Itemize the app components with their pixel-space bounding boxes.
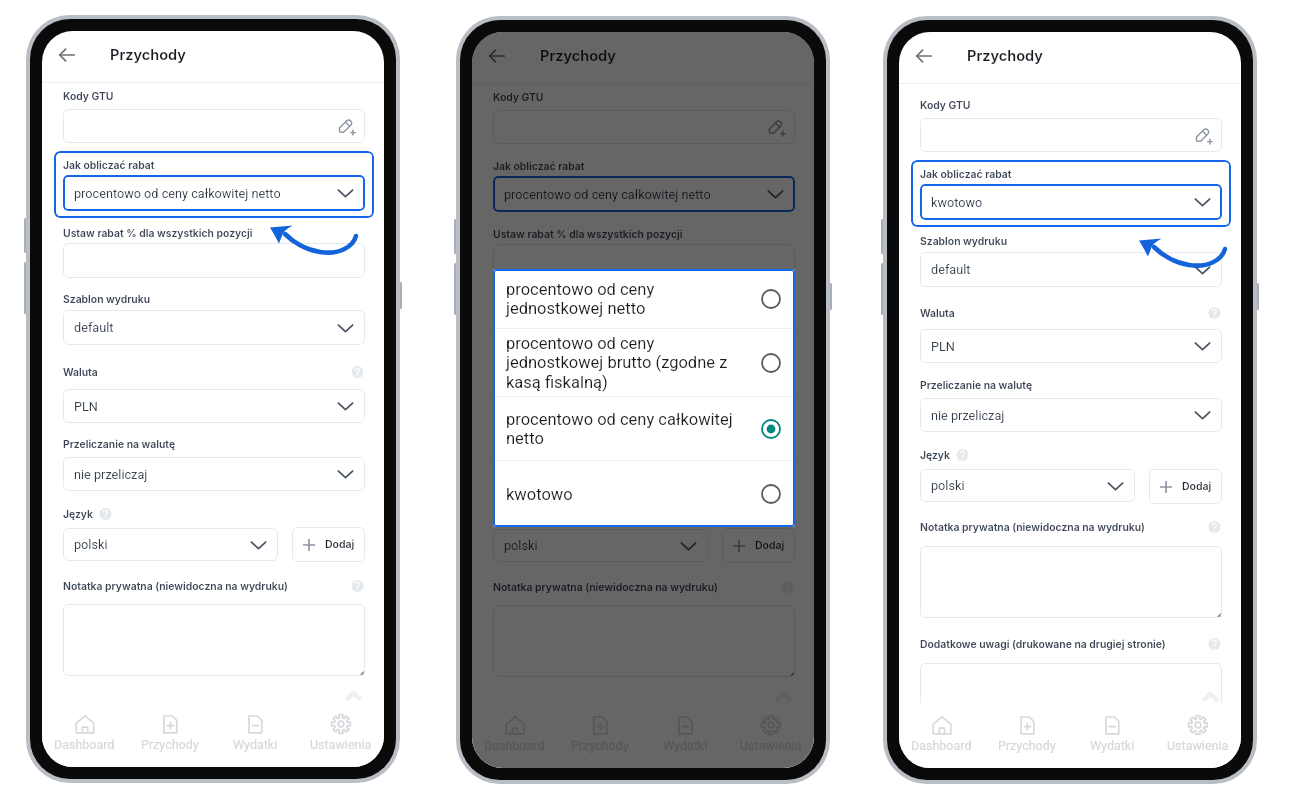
staticText: Szablon wydruku (920, 235, 1008, 247)
button[interactable]: polski (493, 529, 708, 562)
button[interactable]: polski (63, 528, 278, 561)
button[interactable]: Dashboard (42, 710, 127, 755)
staticText: Notatka prywatna (niewidoczna na wydruku… (493, 581, 718, 593)
staticText: Kody GTU (63, 90, 114, 102)
button[interactable]: Dodaj (292, 527, 365, 562)
staticText: polski (504, 538, 538, 553)
staticText: kwotowo (931, 195, 983, 210)
button[interactable]: kwotowo (493, 461, 795, 527)
button[interactable] (920, 118, 1222, 152)
button[interactable] (920, 663, 1222, 718)
button[interactable]: Back (484, 43, 510, 69)
button[interactable]: PLN (63, 389, 365, 423)
staticText: Waluta (493, 367, 528, 379)
staticText: Dashboard (911, 738, 972, 753)
button[interactable]: default (63, 310, 365, 345)
button[interactable]: procentowo od ceny jednostkowej brutto (… (493, 329, 795, 396)
staticText: Wydatki (1090, 738, 1135, 753)
staticText: Przychody (998, 738, 1056, 753)
staticText: Przychody (967, 47, 1043, 65)
staticText: Przychody (571, 738, 629, 753)
button[interactable] (63, 109, 365, 143)
staticText: Waluta (63, 366, 98, 378)
button[interactable]: PLN (920, 329, 1222, 363)
staticText: Język (63, 508, 93, 520)
staticText: Szablon wydruku (493, 294, 581, 306)
button[interactable]: Przychody (557, 711, 642, 756)
button[interactable]: Back (54, 42, 80, 68)
staticText: Przeliczanie na walutę (63, 438, 176, 450)
button[interactable]: procentowo od ceny całkowitej netto (63, 175, 365, 211)
staticText: Wydatki (663, 738, 708, 753)
button[interactable]: Wydatki (1069, 711, 1155, 756)
button[interactable]: Ustawienia (728, 711, 814, 756)
button[interactable]: Ustawienia (298, 710, 384, 755)
button[interactable]: Wydatki (642, 711, 728, 756)
button[interactable]: Back (911, 43, 937, 69)
staticText: Dodaj (1182, 480, 1212, 493)
staticText: polski (931, 478, 965, 493)
staticText: kwotowo (506, 485, 752, 504)
staticText: Język (920, 449, 950, 461)
button[interactable]: Przychody (127, 710, 212, 755)
button[interactable]: procentowo od ceny jednostkowej netto (493, 269, 795, 328)
button[interactable] (920, 546, 1222, 618)
staticText: Waluta (920, 307, 955, 319)
button[interactable]: default (920, 252, 1222, 287)
staticText: Dashboard (54, 737, 115, 752)
button[interactable] (63, 604, 365, 676)
button[interactable]: nie przeliczaj (493, 458, 795, 492)
staticText: Notatka prywatna (niewidoczna na wydruku… (920, 521, 1145, 533)
button[interactable]: Przychody (984, 711, 1069, 756)
button[interactable]: nie przeliczaj (63, 457, 365, 491)
button[interactable] (493, 244, 795, 279)
staticText: Dodaj (325, 538, 355, 551)
button[interactable]: Wydatki (212, 710, 298, 755)
staticText: nie przeliczaj (931, 408, 1005, 423)
button[interactable]: procentowo od ceny całkowitej netto (493, 176, 795, 212)
staticText: Przychody (141, 737, 199, 752)
staticText: default (931, 262, 971, 277)
button[interactable]: Dodaj (1149, 469, 1222, 504)
button[interactable]: default (493, 311, 795, 346)
staticText: Jak obliczać rabat (493, 160, 585, 172)
button[interactable]: Dodaj (722, 528, 795, 563)
staticText: Ustawienia (740, 738, 802, 753)
button[interactable]: nie przeliczaj (920, 398, 1222, 432)
button[interactable]: Ustawienia (1155, 711, 1241, 756)
staticText: Dodaj (755, 539, 785, 552)
staticText: procentowo od ceny jednostkowej brutto (… (506, 334, 752, 392)
staticText: Przychody (110, 46, 186, 64)
staticText: Przychody (540, 47, 616, 65)
staticText: procentowo od ceny całkowitej netto (504, 187, 711, 202)
staticText: Szablon wydruku (63, 293, 151, 305)
staticText: Dodatkowe uwagi (drukowane na drugiej st… (920, 638, 1166, 650)
staticText: Wydatki (233, 737, 278, 752)
button[interactable]: Dashboard (899, 711, 984, 756)
button[interactable]: PLN (493, 390, 795, 424)
staticText: polski (74, 537, 108, 552)
staticText: PLN (931, 339, 955, 354)
button[interactable] (63, 243, 365, 278)
staticText: Język (493, 509, 523, 521)
staticText: Notatka prywatna (niewidoczna na wydruku… (63, 580, 288, 592)
staticText: default (74, 320, 114, 335)
button[interactable]: polski (920, 469, 1135, 502)
staticText: Jak obliczać rabat (63, 159, 155, 171)
staticText: Ustawienia (1167, 738, 1229, 753)
button[interactable]: kwotowo (920, 184, 1222, 220)
staticText: Ustaw rabat % dla wszystkich pozycji (63, 227, 253, 239)
button[interactable]: procentowo od ceny całkowitej netto (493, 397, 795, 460)
button[interactable]: Dashboard (472, 711, 557, 756)
staticText: Ustawienia (310, 737, 372, 752)
staticText: Kody GTU (920, 99, 971, 111)
button[interactable] (493, 110, 795, 144)
staticText: procentowo od ceny całkowitej netto (74, 186, 281, 201)
staticText: default (504, 321, 544, 336)
staticText: Jak obliczać rabat (920, 168, 1012, 180)
staticText: Przeliczanie na walutę (920, 379, 1033, 391)
staticText: Dashboard (484, 738, 545, 753)
